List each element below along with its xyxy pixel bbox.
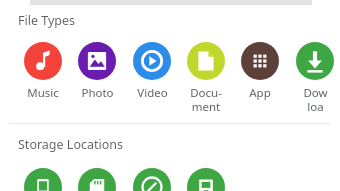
button[interactable]: Storage analysis [133,168,171,191]
staticText: Docu- ment [190,85,222,114]
button[interactable]: Internal storage [24,168,62,191]
staticText: App [249,85,271,101]
button[interactable]: App [233,42,287,101]
staticText: Music [27,85,59,101]
staticText: Dow loa [303,85,328,114]
other: Document [187,42,225,80]
button[interactable]: Music [16,42,70,101]
staticText: Storage Locations [18,136,123,153]
button[interactable]: SD card [78,168,116,191]
other: App [241,42,279,80]
button[interactable]: Photo [70,42,124,101]
other: Download [296,42,334,80]
staticText: File Types [18,12,76,29]
button[interactable]: Document [179,42,233,114]
button[interactable]: Download [288,42,340,114]
staticText: Photo [81,85,114,101]
other: Photo [78,42,116,80]
button[interactable]: Transfer [187,168,225,191]
button[interactable]: Video [125,42,179,101]
other: Video [133,42,171,80]
other: Music [24,42,62,80]
staticText: Video [137,85,168,101]
